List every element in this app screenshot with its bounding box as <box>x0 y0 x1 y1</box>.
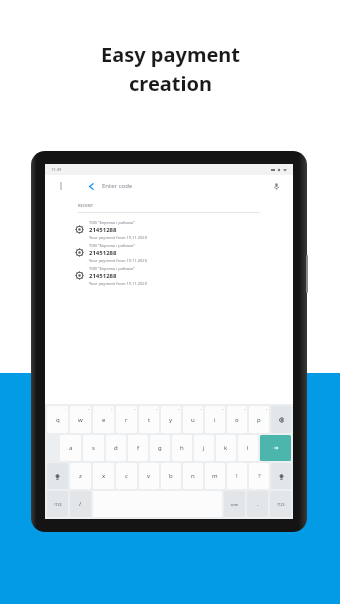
button[interactable]: o <box>227 406 247 433</box>
staticText: 0 <box>266 407 268 410</box>
staticText: z <box>79 472 82 480</box>
button[interactable]: l <box>238 435 258 461</box>
button[interactable]: Menu <box>54 179 68 193</box>
staticText: a <box>69 444 73 452</box>
button[interactable]: n <box>183 463 203 489</box>
button[interactable]: / <box>70 491 91 517</box>
staticText: ?123 <box>277 502 285 507</box>
staticText: 8 <box>222 407 224 410</box>
staticText: i <box>214 416 216 424</box>
staticText: Enter code <box>102 182 133 190</box>
staticText: / <box>79 500 82 508</box>
staticText: b <box>169 472 173 480</box>
button[interactable]: h <box>172 435 192 461</box>
button[interactable]: ТОВ "Березко і робимо" <box>45 264 293 287</box>
staticText: h <box>180 444 184 452</box>
button[interactable]: s <box>83 435 104 461</box>
button[interactable]: c <box>116 463 137 489</box>
button[interactable]: e <box>93 406 114 433</box>
button[interactable]: ТОВ "Березко і робимо" <box>45 218 293 241</box>
button[interactable]: Back <box>84 179 98 193</box>
staticText: s <box>92 444 95 452</box>
staticText: 21451288 <box>89 272 117 280</box>
button[interactable]: k <box>216 435 236 461</box>
staticText: ТОВ "Березко і робимо" <box>89 220 135 225</box>
staticText: x <box>102 472 106 480</box>
staticText: y <box>169 416 173 424</box>
staticText: w <box>78 416 83 424</box>
button[interactable]: w <box>70 406 91 433</box>
button[interactable]: m <box>205 463 225 489</box>
button[interactable]: Voice search <box>269 179 283 193</box>
staticText: ТОВ "Березко і робимо" <box>89 266 135 271</box>
button[interactable]: ! <box>227 463 247 489</box>
button[interactable]: i <box>205 406 225 433</box>
button[interactable]: u <box>183 406 203 433</box>
staticText: 5 <box>156 407 158 410</box>
staticText: 3 <box>111 407 113 410</box>
staticText: n <box>191 472 195 480</box>
staticText: 1 <box>65 407 67 410</box>
button[interactable]: a <box>60 435 81 461</box>
staticText: ! <box>236 472 238 480</box>
button[interactable]: v <box>139 463 159 489</box>
staticText: e <box>102 416 106 424</box>
staticText: .com <box>230 502 239 507</box>
button[interactable]: y <box>161 406 181 433</box>
staticText: 2 <box>88 407 90 410</box>
button[interactable]: f <box>128 435 148 461</box>
staticText: 11:39 <box>51 167 62 172</box>
staticText: creation <box>129 70 212 97</box>
staticText: Your payment from 19.11.2020 <box>89 258 147 263</box>
staticText: Your payment from 19.11.2020 <box>89 281 147 286</box>
button[interactable]: j <box>194 435 214 461</box>
staticText: ?123 <box>54 502 62 507</box>
staticText: p <box>257 416 261 424</box>
staticText: 7 <box>200 407 202 410</box>
button[interactable]: ТОВ "Березко і робимо" <box>45 241 293 264</box>
button[interactable]: Shift <box>47 463 68 489</box>
button[interactable]: d <box>106 435 126 461</box>
staticText: 21451288 <box>89 249 117 257</box>
staticText: . <box>257 500 259 508</box>
button[interactable]: p <box>249 406 269 433</box>
button[interactable]: q <box>47 406 68 433</box>
button[interactable]: x <box>93 463 114 489</box>
button[interactable]: b <box>161 463 181 489</box>
button[interactable]: ? <box>249 463 269 489</box>
button[interactable]: ?123 <box>270 491 291 517</box>
staticText: Your payment from 19.11.2020 <box>89 235 147 240</box>
staticText: l <box>247 444 249 452</box>
staticText: ? <box>258 472 261 480</box>
staticText: Easy payment <box>101 41 240 68</box>
staticText: d <box>114 444 118 452</box>
button[interactable]: Backspace <box>271 406 291 433</box>
staticText: v <box>147 472 151 480</box>
staticText: q <box>56 416 60 424</box>
staticText: r <box>125 416 128 424</box>
staticText: ТОВ "Березко і робимо" <box>89 243 135 248</box>
staticText: 4 <box>134 407 136 410</box>
staticText: o <box>235 416 239 424</box>
staticText: 9 <box>244 407 246 410</box>
button[interactable]: Shift <box>271 463 291 489</box>
staticText: f <box>137 444 140 452</box>
staticText: 21451288 <box>89 226 117 234</box>
staticText: RECENT <box>78 203 93 208</box>
staticText: m <box>212 472 218 480</box>
staticText: c <box>125 472 128 480</box>
button[interactable]: ?123 <box>47 491 68 517</box>
button[interactable]: r <box>116 406 137 433</box>
staticText: t <box>148 416 151 424</box>
button[interactable]: t <box>139 406 159 433</box>
staticText: k <box>224 444 228 452</box>
button[interactable]: Enter <box>260 435 291 461</box>
staticText: 6 <box>178 407 180 410</box>
button[interactable]: g <box>150 435 170 461</box>
button[interactable]: .com <box>224 491 245 517</box>
staticText: g <box>158 444 162 452</box>
button[interactable]: z <box>70 463 91 489</box>
staticText: u <box>191 416 195 424</box>
